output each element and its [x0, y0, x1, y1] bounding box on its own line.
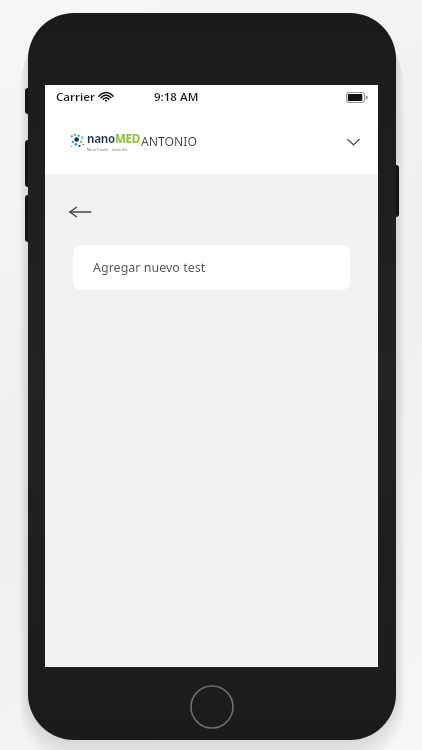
staticText: nano — [87, 131, 115, 147]
staticText: More health · more life — [87, 147, 128, 152]
button[interactable]: Agregar nuevo test — [73, 245, 350, 290]
button[interactable]: Expand patient selector — [342, 131, 364, 153]
button[interactable]: nano — [45, 109, 378, 174]
button[interactable]: Home — [190, 685, 234, 729]
staticText: MED — [115, 131, 140, 147]
staticText: ANTONIO FRANCISCO CAÑETE PLA — [141, 133, 241, 150]
staticText: 9:18 AM — [154, 89, 199, 105]
staticText: Agregar nuevo test — [93, 259, 206, 276]
staticText: Carrier — [56, 89, 96, 105]
button[interactable]: Back — [62, 194, 98, 230]
